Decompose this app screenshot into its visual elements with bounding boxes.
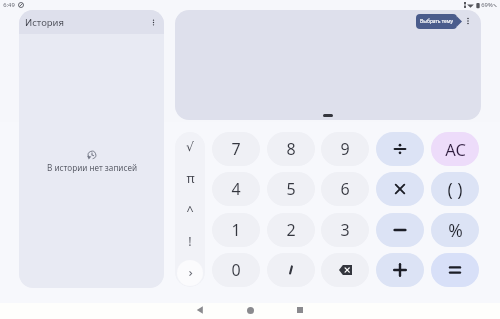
staticText: %: [448, 218, 463, 242]
staticText: ( ): [447, 177, 463, 201]
button[interactable]: !: [175, 228, 205, 254]
staticText: ^: [186, 202, 194, 219]
staticText: √: [186, 139, 194, 154]
staticText: 7: [231, 138, 241, 160]
staticText: История: [25, 16, 64, 29]
staticText: 4: [231, 178, 241, 200]
button[interactable]: 0: [212, 253, 260, 287]
staticText: 8: [286, 138, 296, 160]
button[interactable]: Decimal separator: [267, 253, 315, 287]
other: Multiply: [392, 181, 408, 197]
button[interactable]: 2: [267, 213, 315, 247]
staticText: 0: [231, 259, 241, 281]
staticText: 6:49: [3, 1, 15, 9]
button[interactable]: %: [431, 213, 479, 247]
other: Divide: [392, 141, 408, 157]
staticText: Выбрать тему: [420, 18, 453, 25]
button[interactable]: 8: [267, 132, 315, 166]
button[interactable]: Backspace: [321, 253, 369, 287]
button[interactable]: Plus: [376, 253, 424, 287]
staticText: 5: [286, 178, 296, 200]
staticText: 6: [340, 178, 350, 200]
staticText: AC: [445, 138, 466, 160]
button[interactable]: √: [175, 133, 205, 159]
button[interactable]: Equals: [431, 253, 479, 287]
staticText: В истории нет записей: [47, 162, 137, 173]
other: Backspace: [339, 265, 352, 275]
button[interactable]: 4: [212, 172, 260, 206]
button[interactable]: Выбрать тему: [416, 14, 457, 29]
button[interactable]: Divide: [376, 132, 424, 166]
button[interactable]: ( ): [431, 172, 479, 206]
button[interactable]: Minus: [376, 213, 424, 247]
button[interactable]: π: [175, 165, 205, 191]
button[interactable]: 6: [321, 172, 369, 206]
button[interactable]: History options: [146, 15, 160, 29]
button[interactable]: ^: [175, 197, 205, 223]
staticText: 2: [286, 219, 296, 241]
button[interactable]: 9: [321, 132, 369, 166]
button[interactable]: More options: [461, 14, 475, 28]
other: Plus: [392, 262, 408, 278]
staticText: π: [186, 170, 195, 187]
button[interactable]: Expand keypad: [177, 260, 203, 286]
button[interactable]: 7: [212, 132, 260, 166]
button[interactable]: Back: [192, 302, 208, 318]
staticText: 3: [340, 219, 350, 241]
staticText: 1: [231, 219, 241, 241]
other: Minus: [392, 222, 408, 238]
button[interactable]: AC: [431, 132, 479, 166]
staticText: !: [188, 233, 192, 250]
other: Equals: [447, 262, 463, 278]
button[interactable]: Home: [242, 302, 258, 318]
button[interactable]: 5: [267, 172, 315, 206]
button[interactable]: 1: [212, 213, 260, 247]
staticText: 9: [340, 138, 350, 160]
button[interactable]: 3: [321, 213, 369, 247]
button[interactable]: История: [19, 10, 164, 34]
button[interactable]: Recent apps: [292, 302, 308, 318]
button[interactable]: Multiply: [376, 172, 424, 206]
other: Decimal separator: [283, 262, 299, 278]
staticText: 69%: [481, 1, 493, 9]
